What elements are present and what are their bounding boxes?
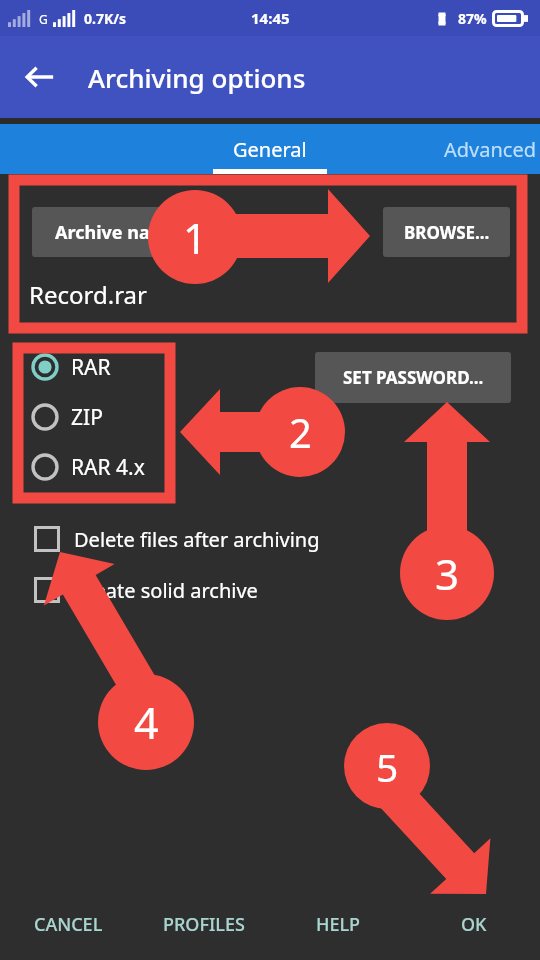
staticText: OK [461, 912, 487, 937]
button[interactable]: Archive name [32, 207, 200, 257]
button[interactable]: PROFILES [146, 896, 262, 952]
staticText: 14:45 [251, 8, 290, 28]
staticText: 3 [435, 545, 460, 602]
staticText: Record.rar [29, 278, 147, 311]
button[interactable]: Advanced [420, 124, 540, 174]
staticText: SET PASSWORD... [343, 366, 484, 389]
button[interactable]: HELP [292, 896, 384, 952]
button[interactable]: CANCEL [16, 896, 120, 952]
button[interactable]: Back [12, 49, 68, 105]
staticText: Archive name [55, 220, 178, 245]
staticText: Delete files after archiving [74, 526, 320, 553]
staticText: PROFILES [163, 912, 245, 937]
staticText: Create solid archive [74, 577, 258, 604]
button[interactable]: General [210, 124, 330, 174]
button[interactable]: SET PASSWORD... [315, 352, 511, 403]
staticText: Archiving options [88, 60, 306, 95]
staticText: 0.7K/s [84, 9, 127, 28]
button[interactable]: Delete files after archiving [33, 518, 320, 560]
staticText: 2 [289, 405, 312, 459]
button[interactable]: OK [438, 896, 510, 952]
button[interactable]: Create solid archive [33, 569, 258, 611]
staticText: 4 [134, 693, 159, 752]
staticText: G [39, 11, 48, 27]
staticText: Advanced [444, 136, 536, 163]
staticText: CANCEL [34, 912, 103, 937]
button[interactable]: BROWSE... [383, 207, 510, 257]
staticText: ZIP [71, 403, 103, 432]
staticText: RAR 4.x [71, 453, 145, 482]
button[interactable]: RAR [30, 346, 162, 388]
staticText: 87% [458, 9, 487, 28]
button[interactable]: ZIP [30, 396, 162, 438]
staticText: BROWSE... [404, 221, 490, 244]
staticText: 5 [376, 740, 399, 793]
staticText: HELP [316, 912, 361, 937]
staticText: General [233, 136, 307, 163]
staticText: RAR [71, 353, 111, 382]
staticText: 1 [183, 209, 208, 266]
button[interactable]: RAR 4.x [30, 446, 162, 488]
